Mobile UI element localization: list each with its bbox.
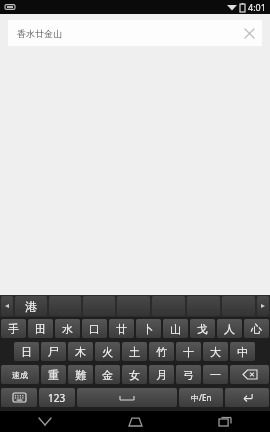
button[interactable]: 一 (203, 365, 228, 384)
button[interactable]: 人 (217, 319, 242, 338)
button[interactable]: 速成 (1, 365, 39, 384)
button[interactable]: 竹 (149, 342, 174, 361)
button[interactable] (187, 296, 220, 316)
staticText: 日 (21, 345, 32, 359)
staticText: 香水廿金山 (17, 28, 236, 39)
staticText: 4:01 (248, 1, 266, 13)
staticText: 一 (210, 368, 221, 382)
staticText: 港 (25, 299, 37, 314)
button[interactable]: 大 (203, 342, 228, 361)
button[interactable]: 香水廿金山 (8, 20, 262, 46)
button[interactable]: Recent apps (180, 411, 270, 432)
button[interactable]: 水 (55, 319, 80, 338)
staticText: 女 (129, 368, 140, 382)
button[interactable]: 土 (122, 342, 147, 361)
staticText: 123 (48, 391, 66, 405)
staticText: 重 (48, 368, 59, 382)
staticText: 中/En (191, 392, 212, 403)
staticText: 木 (75, 345, 86, 359)
button[interactable] (49, 296, 81, 316)
staticText: 水 (62, 322, 73, 336)
button[interactable]: 心 (244, 319, 269, 338)
staticText: 人 (224, 322, 235, 336)
button[interactable]: 火 (95, 342, 120, 361)
staticText: 口 (89, 322, 100, 336)
staticText: 火 (102, 345, 113, 359)
staticText: 大 (210, 345, 221, 359)
button[interactable]: 十 (176, 342, 201, 361)
button[interactable]: Switch keyboard (1, 388, 37, 407)
button[interactable]: 山 (163, 319, 188, 338)
staticText: 難 (75, 368, 86, 382)
staticText: 十 (183, 345, 194, 359)
button[interactable]: Home (90, 411, 180, 432)
button[interactable]: 卜 (136, 319, 161, 338)
button[interactable]: 重 (41, 365, 66, 384)
button[interactable]: Hide keyboard (0, 411, 90, 432)
button[interactable]: 中/En (179, 388, 223, 407)
button[interactable]: Space (77, 388, 177, 407)
staticText: 尸 (48, 345, 59, 359)
staticText: 月 (156, 368, 167, 382)
staticText: 中 (237, 345, 248, 359)
button[interactable]: 難 (68, 365, 93, 384)
button[interactable]: Backspace (230, 365, 269, 384)
button[interactable] (83, 296, 115, 316)
button[interactable]: Enter (225, 388, 269, 407)
button[interactable]: 弓 (176, 365, 201, 384)
staticText: 戈 (197, 322, 208, 336)
staticText: 手 (8, 322, 19, 336)
button[interactable] (152, 296, 185, 316)
staticText: 心 (251, 322, 262, 336)
button[interactable]: Clear text (236, 20, 262, 46)
staticText: 速成 (12, 370, 28, 380)
button[interactable] (117, 296, 150, 316)
button[interactable]: 戈 (190, 319, 215, 338)
button[interactable]: 廿 (109, 319, 134, 338)
button[interactable]: 木 (68, 342, 93, 361)
button[interactable]: 手 (1, 319, 26, 338)
button[interactable]: 中 (230, 342, 255, 361)
button[interactable]: 口 (82, 319, 107, 338)
button[interactable]: More candidates (257, 296, 269, 316)
button[interactable]: 123 (39, 388, 75, 407)
button[interactable]: 金 (95, 365, 120, 384)
staticText: 田 (35, 322, 46, 336)
button[interactable]: 田 (28, 319, 53, 338)
button[interactable]: 月 (149, 365, 174, 384)
button[interactable]: 女 (122, 365, 147, 384)
staticText: 弓 (183, 368, 194, 382)
button[interactable]: 日 (14, 342, 39, 361)
button[interactable]: 尸 (41, 342, 66, 361)
staticText: 土 (129, 345, 140, 359)
staticText: 金 (102, 368, 113, 382)
button[interactable]: Previous candidates (1, 296, 13, 316)
staticText: 山 (170, 322, 181, 336)
button[interactable] (222, 296, 255, 316)
button[interactable]: 港 (15, 296, 47, 316)
staticText: 廿 (116, 322, 127, 336)
staticText: 卜 (143, 322, 154, 336)
staticText: 竹 (156, 345, 167, 359)
